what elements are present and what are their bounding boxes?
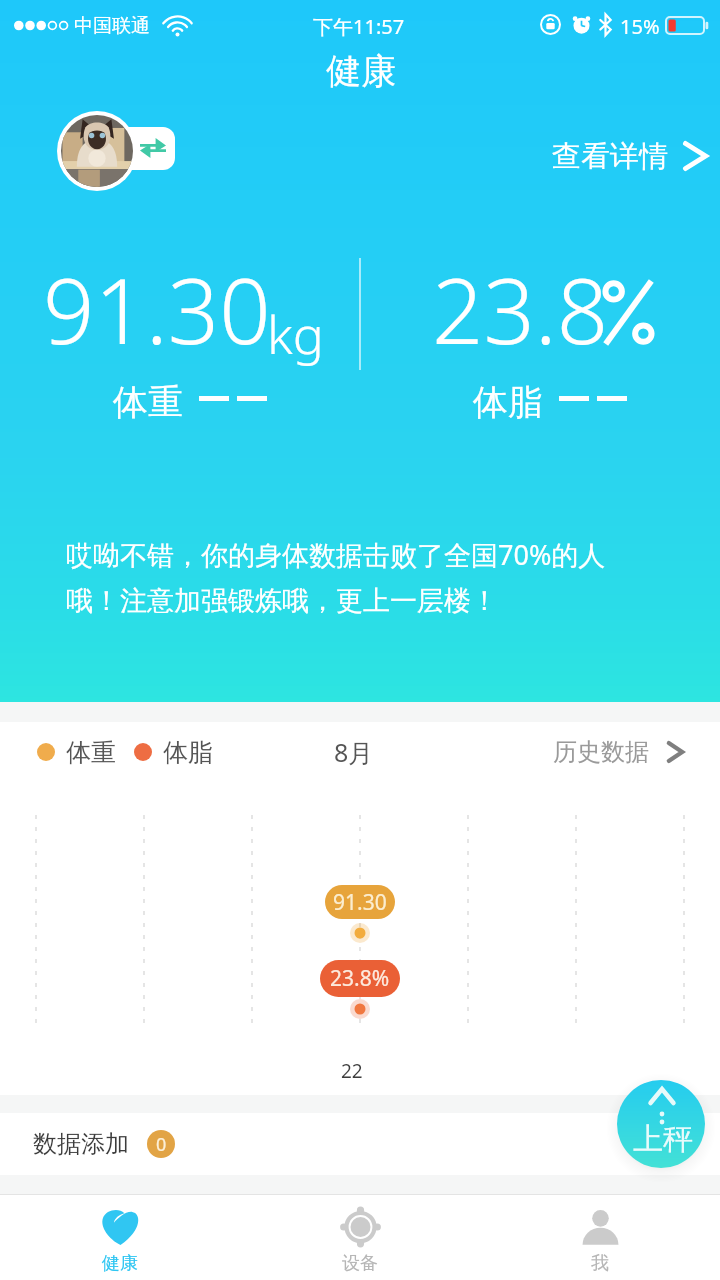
staticText: 23.8 [432, 248, 609, 371]
staticText: 数据添加 [33, 1129, 129, 1159]
staticText: 健康 [326, 49, 396, 93]
staticText: 8月 [334, 735, 374, 769]
staticText: 健康 [102, 1252, 138, 1275]
staticText: 我 [591, 1252, 609, 1275]
staticText: 0 [156, 1132, 167, 1157]
button[interactable]: 用户头像 [61, 115, 133, 187]
staticText: 设备 [342, 1252, 378, 1275]
staticText: 上秤 [633, 1120, 693, 1158]
staticText: 15% [620, 13, 660, 40]
staticText: 体重 [113, 380, 183, 424]
staticText: 查看详情 [552, 138, 668, 175]
button[interactable]: 查看详情 [544, 131, 716, 181]
button[interactable]: 健康 [0, 1194, 240, 1280]
button[interactable]: 我 [480, 1194, 720, 1280]
staticText: 历史数据 [553, 737, 649, 767]
button[interactable]: 切换用户 [112, 127, 175, 170]
staticText: 22 [341, 1058, 363, 1084]
staticText: kg [267, 298, 324, 369]
staticText: 体重 [66, 737, 116, 768]
staticText: 体脂 [473, 380, 543, 424]
button[interactable]: 数据添加 [0, 1113, 720, 1175]
button[interactable]: 上秤 [617, 1080, 705, 1168]
staticText: 91.30 [333, 888, 387, 917]
button[interactable]: 历史数据 [545, 722, 694, 782]
staticText: 下午11:57 [313, 13, 405, 40]
staticText: 哎呦不错，你的身体数据击败了全国70%的人哦！注意加强锻炼哦，更上一层楼！ [66, 536, 644, 618]
staticText: 91.30 [43, 248, 271, 371]
staticText: 23.8% [330, 964, 390, 993]
button[interactable]: 设备 [240, 1194, 480, 1280]
staticText: 体脂 [163, 737, 213, 768]
staticText: 中国联通 [74, 14, 150, 38]
